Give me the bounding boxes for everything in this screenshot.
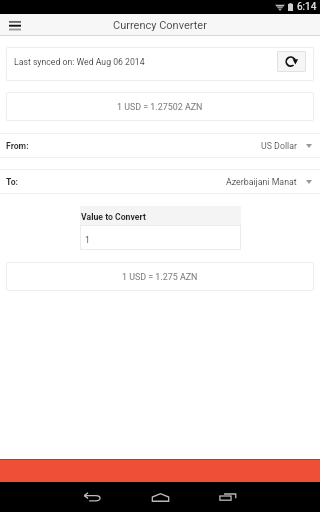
staticText: Last synced on: Wed Aug 06 2014 xyxy=(14,57,145,67)
staticText: Currency Converter xyxy=(113,19,207,32)
button[interactable]: 1 USD = 1.275 AZN xyxy=(6,262,314,291)
staticText: Azerbaijani Manat xyxy=(226,177,297,187)
staticText: 1 xyxy=(85,235,90,245)
staticText: To: xyxy=(6,177,19,187)
staticText: 1 USD = 1.27502 AZN xyxy=(117,102,203,112)
staticText: From: xyxy=(6,141,29,151)
button[interactable]: Home xyxy=(126,482,194,512)
staticText: 1 USD = 1.275 AZN xyxy=(122,272,198,282)
button[interactable]: Refresh exchange rates xyxy=(277,51,306,72)
button[interactable]: Open navigation menu xyxy=(4,15,25,36)
button[interactable]: To: xyxy=(0,169,320,194)
staticText: Value to Convert xyxy=(81,212,146,222)
staticText: US Dollar xyxy=(261,141,297,151)
button[interactable]: Back xyxy=(58,482,126,512)
button[interactable]: 1 USD = 1.27502 AZN xyxy=(6,92,314,121)
button[interactable]: 1 xyxy=(80,225,241,250)
staticText: 6:14 xyxy=(297,1,317,13)
button[interactable]: Recent apps xyxy=(194,482,262,512)
button[interactable]: From: xyxy=(0,133,320,158)
